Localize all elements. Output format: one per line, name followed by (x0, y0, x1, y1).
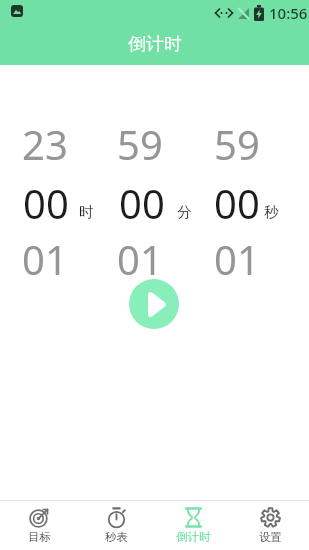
staticText: 59 (117, 117, 163, 171)
button[interactable] (129, 279, 179, 329)
staticText: 01 (214, 232, 260, 286)
staticText: 59 (214, 117, 260, 171)
button[interactable]: 目标 (0, 501, 78, 550)
staticText: 00 (23, 176, 69, 230)
staticText: 10:56 (269, 3, 308, 23)
staticText: 目标 (28, 530, 51, 544)
staticText: 00 (214, 176, 260, 230)
staticText: 分 (177, 203, 192, 221)
button[interactable]: 设置 (232, 501, 309, 550)
button[interactable] (0, 110, 103, 290)
staticText: 01 (22, 232, 68, 286)
staticText: 时 (79, 203, 94, 221)
button[interactable]: 倒计时 (155, 501, 232, 550)
staticText: 秒表 (105, 530, 128, 544)
staticText: 23 (22, 117, 68, 171)
staticText: 设置 (259, 530, 282, 544)
staticText: 倒计时 (176, 530, 211, 544)
staticText: 01 (117, 232, 163, 286)
staticText: 秒 (264, 203, 279, 221)
button[interactable]: 秒表 (78, 501, 155, 550)
staticText: 倒计时 (128, 33, 182, 56)
staticText: 00 (119, 176, 165, 230)
